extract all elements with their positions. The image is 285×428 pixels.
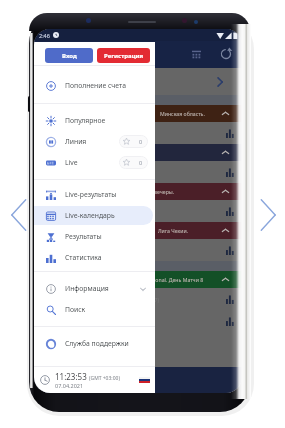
button[interactable]: Live-результаты	[34, 185, 153, 204]
button[interactable]: Результаты	[34, 227, 153, 246]
button[interactable]	[34, 310, 242, 332]
staticText: Минская область.	[160, 110, 205, 117]
button[interactable]: Линия	[34, 132, 153, 151]
staticText: 07.04.2021	[55, 382, 84, 389]
staticText: 0	[139, 159, 143, 166]
staticText: Пополнение счета	[65, 81, 126, 90]
button[interactable]: Лига Чехии.	[34, 222, 242, 239]
button[interactable]: Next	[256, 196, 280, 234]
staticText: Результаты	[65, 232, 102, 241]
button[interactable]: Previous	[7, 196, 31, 234]
button[interactable]: (7)	[34, 288, 242, 310]
staticText: Информация	[65, 284, 109, 293]
staticText: Служба поддержки	[65, 339, 129, 348]
button[interactable]	[34, 200, 242, 222]
staticText: Популярное	[65, 116, 106, 125]
staticText: 2:46	[39, 32, 50, 39]
button[interactable]: Calendar	[187, 45, 205, 63]
staticText: 0	[139, 138, 143, 145]
staticText: Live	[65, 158, 78, 167]
button[interactable]	[34, 144, 242, 161]
staticText: Линия	[65, 137, 87, 146]
button[interactable]: ional. День Матчи 8	[34, 271, 242, 288]
staticText: ional. День Матчи 8	[154, 276, 204, 283]
button[interactable]: Live-календарь	[34, 206, 153, 225]
staticText: Поиск	[65, 305, 86, 314]
button[interactable]: Пополнение счета	[34, 76, 153, 95]
staticText: Лига Чехии.	[158, 227, 189, 234]
button[interactable]: Минская область.	[34, 105, 242, 122]
staticText: Live-календарь	[65, 211, 115, 220]
staticText: 11:23:53	[55, 371, 87, 382]
button[interactable]: Live	[34, 153, 153, 172]
staticText: Регистрация	[104, 52, 144, 60]
button[interactable]: вечеры.	[34, 183, 242, 200]
button[interactable]: Вход	[45, 48, 93, 63]
button[interactable]	[34, 239, 242, 261]
button[interactable]	[34, 161, 242, 183]
button[interactable]	[34, 68, 242, 95]
button[interactable]: Регистрация	[97, 48, 150, 63]
staticText: Live-результаты	[65, 190, 117, 199]
staticText: вечеры.	[154, 188, 175, 195]
button[interactable]: Служба поддержки	[34, 334, 153, 353]
staticText: Вход	[62, 52, 77, 60]
button[interactable]	[34, 122, 242, 144]
staticText: (GMT +03:00)	[89, 375, 120, 382]
button[interactable]: Избранное	[34, 367, 242, 393]
button[interactable]: Информация	[34, 279, 153, 298]
button[interactable]: Поиск	[34, 300, 153, 319]
button[interactable]: Статистика	[34, 248, 153, 267]
staticText: (7)	[153, 296, 160, 303]
button[interactable]: Refresh	[217, 45, 235, 63]
staticText: Статистика	[65, 253, 102, 262]
button[interactable]: Популярное	[34, 111, 153, 130]
